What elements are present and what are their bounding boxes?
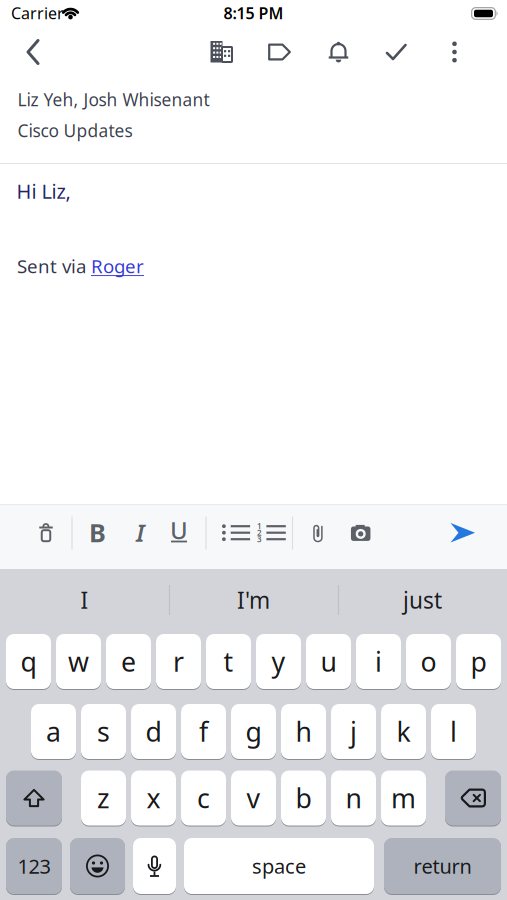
button[interactable]: m (381, 769, 426, 826)
button[interactable]: v (231, 769, 276, 826)
button[interactable]: u (306, 633, 351, 690)
button[interactable]: return (384, 837, 501, 895)
staticText: p (470, 644, 486, 679)
button[interactable]: r (156, 633, 201, 690)
staticText: Liz Yeh, Josh Whisenant (17, 88, 209, 111)
staticText: Sent via (17, 254, 91, 278)
staticText: i (375, 644, 382, 679)
button[interactable]: k (381, 703, 426, 760)
button[interactable]: z (81, 769, 126, 826)
button[interactable]: Bulleted list (216, 513, 256, 553)
staticText: c (197, 780, 210, 816)
button[interactable]: q (6, 633, 51, 690)
staticText: Carrier (11, 2, 64, 24)
staticText: q (20, 644, 36, 679)
button[interactable]: p (456, 633, 501, 690)
button[interactable]: Shift (6, 769, 62, 826)
button[interactable]: I (4, 577, 164, 623)
button[interactable]: Numbered list (251, 513, 291, 553)
staticText: Roger (91, 254, 144, 278)
staticText: 2 (257, 527, 262, 538)
button[interactable]: Discard draft (28, 513, 64, 553)
button[interactable]: Roger (91, 254, 144, 278)
staticText: I (80, 585, 88, 615)
staticText: z (97, 780, 110, 816)
button[interactable]: c (181, 769, 226, 826)
staticText: space (252, 853, 306, 879)
button[interactable]: Label (257, 30, 301, 74)
button[interactable]: Dictate (133, 837, 176, 895)
staticText: U (170, 514, 188, 546)
button[interactable]: y (256, 633, 301, 690)
staticText: g (245, 714, 261, 749)
staticText: 1 (257, 521, 262, 531)
staticText: B (89, 516, 106, 549)
button[interactable]: i (356, 633, 401, 690)
button[interactable]: space (184, 837, 374, 895)
staticText: j (350, 714, 357, 749)
button[interactable]: Snooze (316, 30, 360, 74)
staticText: Cisco Updates (17, 119, 132, 142)
staticText: I (136, 517, 145, 548)
button[interactable]: Underline (162, 513, 196, 553)
staticText: n (345, 780, 361, 816)
staticText: u (320, 644, 336, 679)
button[interactable]: Delete (445, 769, 501, 826)
button[interactable]: o (406, 633, 451, 690)
staticText: d (145, 714, 161, 749)
staticText: s (97, 714, 110, 749)
button[interactable]: j (331, 703, 376, 760)
button[interactable]: Back (13, 30, 53, 74)
button[interactable]: e (106, 633, 151, 690)
button[interactable]: just (342, 577, 502, 623)
button[interactable]: Italic (125, 512, 155, 552)
button[interactable]: a (31, 703, 76, 760)
button[interactable]: s (81, 703, 126, 760)
button[interactable]: Attach file (301, 513, 335, 553)
button[interactable]: Move to folder (199, 30, 243, 74)
button[interactable]: f (181, 703, 226, 760)
button[interactable]: n (331, 769, 376, 826)
staticText: 3 (257, 534, 262, 544)
staticText: m (391, 780, 416, 816)
button[interactable]: x (131, 769, 176, 826)
button[interactable]: Mark done (374, 30, 418, 74)
button[interactable]: Insert photo (342, 513, 380, 553)
staticText: b (295, 780, 311, 816)
staticText: I'm (237, 585, 270, 615)
staticText: e (121, 644, 136, 679)
staticText: 8:15 PM (223, 2, 283, 24)
staticText: r (173, 644, 184, 679)
button[interactable]: More options (432, 30, 476, 74)
staticText: just (403, 585, 442, 615)
staticText: l (450, 714, 457, 749)
button[interactable]: h (281, 703, 326, 760)
button[interactable]: d (131, 703, 176, 760)
button[interactable]: I'm (173, 577, 333, 623)
staticText: 123 (17, 853, 50, 879)
button[interactable]: Bold (80, 512, 114, 552)
button[interactable]: l (431, 703, 476, 760)
button[interactable]: Send (441, 513, 485, 553)
staticText: v (246, 780, 260, 816)
button[interactable]: t (206, 633, 251, 690)
button[interactable]: b (281, 769, 326, 826)
staticText: w (68, 644, 89, 679)
staticText: a (46, 714, 61, 749)
staticText: f (199, 714, 208, 749)
staticText: o (420, 644, 436, 679)
staticText: return (413, 853, 471, 879)
staticText: y (271, 644, 285, 679)
button[interactable]: w (56, 633, 101, 690)
staticText: t (223, 644, 233, 679)
staticText: k (396, 714, 410, 749)
staticText: h (295, 714, 311, 749)
button[interactable]: g (231, 703, 276, 760)
staticText: x (146, 780, 160, 816)
button[interactable]: 123 (6, 837, 62, 895)
staticText: Hi Liz, (16, 178, 70, 204)
button[interactable]: Emoji (70, 837, 125, 895)
